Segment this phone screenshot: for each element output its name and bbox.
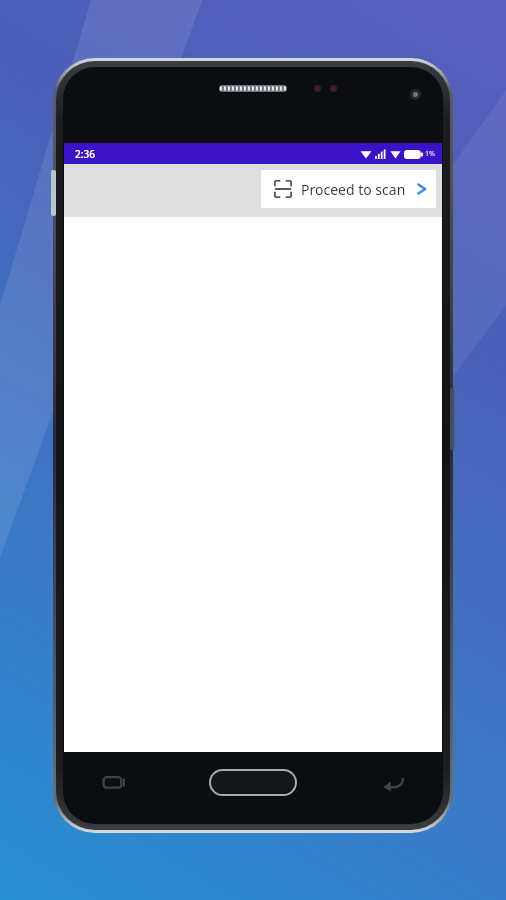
button[interactable]: Recent apps bbox=[101, 771, 127, 793]
staticText: 1% bbox=[425, 149, 435, 159]
staticText: Proceed to scan bbox=[301, 180, 406, 199]
button[interactable]: Home bbox=[211, 771, 295, 794]
staticText: 2:36 bbox=[75, 147, 95, 161]
button[interactable]: Scan bbox=[261, 170, 436, 208]
button[interactable]: Back bbox=[381, 772, 405, 792]
other: Scan bbox=[274, 180, 292, 198]
